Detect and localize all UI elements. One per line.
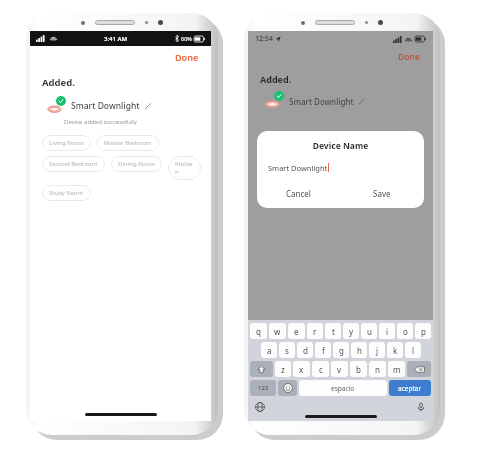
button[interactable]: Cancel	[257, 183, 340, 203]
staticText: v	[337, 364, 342, 375]
staticText: Done	[398, 51, 420, 63]
staticText: p	[421, 326, 426, 337]
staticText: Smart Downlight	[71, 100, 140, 112]
button[interactable]: i	[379, 323, 395, 339]
button[interactable]: aceptar	[389, 380, 431, 396]
button[interactable]: v	[331, 361, 348, 377]
button[interactable]: Edit device name	[144, 102, 152, 110]
staticText: f	[322, 345, 325, 356]
staticText: Smart Downlight	[289, 96, 354, 107]
button[interactable]: o	[397, 323, 413, 339]
staticText: Kitchen	[175, 160, 194, 176]
button[interactable]: d	[297, 342, 313, 358]
button[interactable]: Done	[172, 48, 202, 66]
button[interactable]: c	[312, 361, 329, 377]
staticText: n	[375, 364, 380, 375]
button[interactable]: r	[307, 323, 323, 339]
button[interactable]: g	[333, 342, 349, 358]
button[interactable]: 123	[250, 380, 276, 396]
button[interactable]: Living Room	[42, 135, 91, 151]
button[interactable]: Done	[395, 48, 423, 66]
button[interactable]: m	[388, 361, 405, 377]
button[interactable]: p	[415, 323, 431, 339]
staticText: b	[356, 364, 361, 375]
staticText: Device added successfully	[64, 118, 137, 126]
staticText: l	[412, 345, 415, 356]
staticText: Added.	[42, 76, 75, 89]
button[interactable]: l	[405, 342, 421, 358]
staticText: Dining Room	[118, 160, 155, 168]
staticText: Living Room	[49, 139, 84, 147]
button[interactable]: Shift	[250, 361, 273, 377]
button[interactable]: q	[250, 323, 267, 339]
staticText: espacio	[331, 384, 355, 393]
staticText: aceptar	[398, 384, 422, 393]
staticText: Save	[373, 188, 391, 199]
button[interactable]: y	[343, 323, 359, 339]
staticText: y	[349, 326, 354, 337]
staticText: u	[367, 326, 372, 337]
button[interactable]: Change keyboard language	[255, 402, 265, 412]
button[interactable]: b	[350, 361, 367, 377]
staticText: i	[386, 326, 389, 337]
button[interactable]: w	[269, 323, 286, 339]
staticText: 60%	[181, 35, 192, 42]
staticText: g	[339, 345, 344, 356]
staticText: q	[256, 326, 261, 337]
button[interactable]: n	[369, 361, 386, 377]
button[interactable]: Master Bedroom	[97, 135, 159, 151]
button[interactable]: Study Room	[42, 185, 91, 201]
button[interactable]: Kitchen	[168, 156, 201, 180]
button[interactable]: x	[293, 361, 310, 377]
button[interactable]: Dining Room	[111, 156, 162, 172]
button[interactable]: u	[361, 323, 377, 339]
button[interactable]: j	[369, 342, 385, 358]
button[interactable]: s	[279, 342, 295, 358]
button[interactable]: Dictation	[416, 402, 426, 412]
staticText: Device Name	[257, 140, 424, 152]
staticText: s	[285, 345, 289, 356]
button[interactable]: Second Bedroom	[42, 156, 105, 172]
staticText: h	[357, 345, 362, 356]
staticText: t	[332, 326, 335, 337]
button[interactable]: Save	[340, 183, 424, 203]
staticText: 123	[258, 384, 269, 392]
staticText: k	[393, 345, 398, 356]
staticText: a	[267, 345, 272, 356]
button[interactable]: e	[288, 323, 305, 339]
staticText: z	[281, 364, 285, 375]
button[interactable]: Emoji	[278, 380, 297, 396]
staticText: m	[393, 364, 401, 375]
button[interactable]: z	[275, 361, 291, 377]
staticText: j	[376, 345, 379, 356]
staticText: 3:41 AM	[104, 35, 128, 43]
staticText: Master Bedroom	[104, 139, 152, 147]
button[interactable]: a	[261, 342, 277, 358]
staticText: Done	[175, 51, 199, 63]
button[interactable]: h	[351, 342, 367, 358]
button[interactable]: Backspace	[407, 361, 431, 377]
button[interactable]: f	[315, 342, 331, 358]
button[interactable]: t	[325, 323, 341, 339]
staticText: Added.	[260, 73, 292, 85]
staticText: o	[403, 326, 408, 337]
button[interactable]: espacio	[299, 380, 387, 396]
staticText: Cancel	[286, 188, 311, 199]
staticText: Second Bedroom	[49, 160, 98, 168]
staticText: c	[319, 364, 323, 375]
staticText: 12:54	[255, 34, 273, 44]
staticText: e	[294, 326, 299, 337]
staticText: x	[299, 364, 304, 375]
staticText: r	[313, 326, 317, 337]
button[interactable]: k	[387, 342, 403, 358]
staticText: Study Room	[49, 189, 84, 197]
staticText: Smart Downlight	[268, 163, 328, 173]
staticText: d	[303, 345, 308, 356]
staticText: w	[274, 326, 281, 337]
